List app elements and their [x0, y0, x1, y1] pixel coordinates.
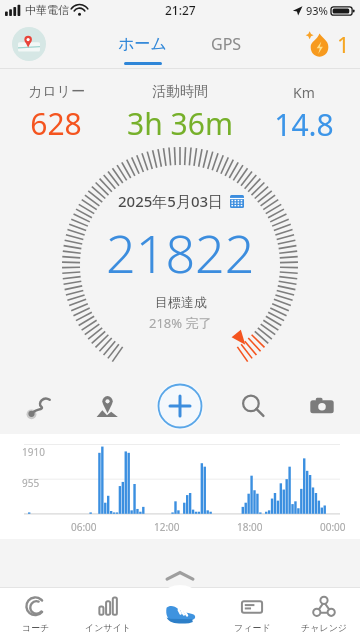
staticText: 1 — [337, 29, 350, 59]
staticText: インサイト — [85, 622, 132, 633]
button[interactable]: ホーム — [108, 28, 177, 60]
staticText: 21822 — [106, 217, 255, 288]
button[interactable]: 活動時間 — [112, 83, 247, 144]
button[interactable]: インサイト — [72, 587, 144, 640]
button[interactable]: 1910 — [0, 434, 360, 539]
staticText: チャレンジ — [301, 622, 348, 633]
staticText: 218% 完了 — [149, 314, 212, 332]
button[interactable]: GPS — [201, 27, 252, 61]
staticText: 活動時間 — [152, 83, 208, 101]
button[interactable]: Streak — [306, 29, 350, 59]
button[interactable]: Activity — [144, 587, 216, 640]
staticText: 628 — [30, 103, 82, 144]
button[interactable]: Expand — [0, 565, 360, 587]
button[interactable]: Km — [247, 83, 360, 145]
button[interactable]: チャレンジ — [288, 587, 360, 640]
staticText: 14.8 — [274, 104, 334, 145]
staticText: GPS — [211, 33, 242, 55]
button[interactable]: 2025年5月03日 — [118, 191, 244, 211]
staticText: カロリー — [28, 83, 85, 101]
staticText: 3h 36m — [127, 103, 233, 144]
staticText: 21:27 — [165, 2, 196, 18]
staticText: コーチ — [22, 622, 50, 633]
staticText: 06:00 — [71, 520, 97, 534]
button[interactable]: Route — [18, 386, 58, 426]
button[interactable]: Add activity — [156, 382, 204, 430]
staticText: 955 — [22, 476, 40, 490]
staticText: 2025年5月03日 — [118, 191, 224, 211]
button[interactable]: Profile — [12, 27, 46, 61]
button[interactable]: カロリー — [0, 83, 112, 144]
button[interactable]: Places — [87, 386, 127, 426]
staticText: 12:00 — [154, 520, 180, 534]
staticText: ホーム — [118, 34, 167, 54]
button[interactable]: Search — [233, 386, 273, 426]
staticText: 93% — [306, 3, 328, 18]
button[interactable]: Camera — [302, 386, 342, 426]
staticText: 中華電信 — [25, 3, 69, 17]
staticText: 00:00 — [320, 520, 346, 534]
staticText: 目標達成 — [155, 294, 207, 310]
staticText: フィード — [234, 622, 271, 633]
staticText: Km — [293, 83, 315, 102]
button[interactable]: フィード — [216, 587, 288, 640]
button[interactable]: コーチ — [0, 587, 72, 640]
staticText: 18:00 — [237, 520, 263, 534]
staticText: 1910 — [22, 445, 45, 459]
